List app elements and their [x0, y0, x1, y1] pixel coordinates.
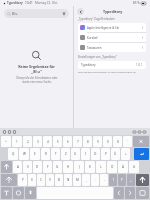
- button[interactable]: O: [91, 148, 100, 160]
- button[interactable]: 1: [12, 136, 22, 147]
- button[interactable]: 2: [23, 136, 32, 147]
- staticText: Überprüfe die Schreibweise oder: [16, 76, 58, 80]
- button[interactable]: C: [37, 174, 45, 186]
- button[interactable]: N: [64, 174, 72, 186]
- button[interactable]: 7: [73, 136, 82, 147]
- button[interactable]: Links: [114, 187, 124, 199]
- button[interactable]: Umschalt links: [1, 174, 17, 186]
- button[interactable]: L: [96, 161, 106, 173]
- button[interactable]: H: [63, 161, 73, 173]
- button[interactable]: T: [51, 148, 60, 160]
- button[interactable]: +: [121, 148, 130, 160]
- staticText: !: [113, 178, 114, 182]
- button[interactable]: Z: [61, 148, 70, 160]
- staticText: Q: [12, 152, 15, 156]
- button[interactable]: Tastatur schließen: [136, 187, 149, 199]
- button[interactable]: ^: [1, 136, 11, 147]
- button[interactable]: I: [81, 148, 90, 160]
- button[interactable]: 9: [93, 136, 102, 147]
- button[interactable]: K: [85, 161, 95, 173]
- button[interactable]: S: [23, 161, 32, 173]
- button[interactable]: Ü: [111, 148, 120, 160]
- button[interactable]: Tastatur ausblenden: [1, 187, 12, 199]
- button[interactable]: R: [41, 148, 50, 160]
- button[interactable]: Q: [8, 148, 18, 160]
- button[interactable]: 0: [103, 136, 112, 147]
- button[interactable]: .: [91, 174, 99, 186]
- button[interactable]: ß: [113, 136, 122, 147]
- button[interactable]: F: [43, 161, 52, 173]
- button[interactable]: !: [109, 174, 117, 186]
- button[interactable]: 3: [33, 136, 42, 147]
- button[interactable]: Aktion 2: [137, 130, 141, 134]
- button[interactable]: D: [33, 161, 42, 173]
- button[interactable]: E: [30, 148, 40, 160]
- button[interactable]: ,: [82, 174, 90, 186]
- button[interactable]: P: [101, 148, 110, 160]
- button[interactable]: Umschalt rechts: [136, 174, 149, 186]
- button[interactable]: Aktion 3: [142, 130, 146, 134]
- staticText: 0: [107, 140, 109, 144]
- staticText: Montag 22. Okt.: [35, 1, 58, 5]
- button[interactable]: Feststelltaste: [1, 161, 12, 173]
- button[interactable]: V: [46, 174, 54, 186]
- button[interactable]: Y: [18, 174, 27, 186]
- button[interactable]: 8: [83, 136, 92, 147]
- button[interactable]: Emoji: [13, 187, 24, 199]
- button[interactable]: 5: [53, 136, 62, 147]
- button[interactable]: -: [100, 174, 108, 186]
- staticText: D: [36, 165, 39, 169]
- button[interactable]: Werkzeug 2: [8, 130, 11, 134]
- staticText: Keine Ergebnisse für: [18, 64, 55, 69]
- button[interactable]: Bl u: [4, 9, 69, 18]
- staticText: K: [89, 165, 91, 169]
- button[interactable]: Apple Intelligence & Siri: [78, 23, 146, 32]
- button[interactable]: Diktat: [25, 187, 36, 199]
- button[interactable]: G: [53, 161, 62, 173]
- staticText: 1: [16, 140, 18, 144]
- button[interactable]: J: [74, 161, 84, 173]
- button[interactable]: #: [129, 161, 139, 173]
- button[interactable]: Eingabe: [134, 148, 149, 160]
- staticText: 5: [57, 140, 59, 144]
- staticText: J: [79, 165, 80, 169]
- button[interactable]: _: [127, 174, 135, 186]
- button[interactable]: Ö: [107, 161, 117, 173]
- button[interactable]: 4: [43, 136, 52, 147]
- button[interactable]: Kurzbef.: [78, 33, 146, 42]
- button[interactable]: U: [71, 148, 80, 160]
- button[interactable]: Zurück: [77, 8, 84, 15]
- button[interactable]: ?: [118, 174, 126, 186]
- button[interactable]: X: [28, 174, 36, 186]
- button[interactable]: Werkzeug 1: [3, 130, 6, 134]
- staticText: V: [49, 178, 51, 182]
- staticText: 6: [67, 140, 69, 144]
- staticText: Z: [65, 152, 67, 156]
- staticText: 4: [47, 140, 49, 144]
- button[interactable]: Tastaturen: [78, 43, 146, 52]
- staticText: C: [40, 178, 42, 182]
- button[interactable]: Rechts: [125, 187, 135, 199]
- button[interactable]: W: [19, 148, 29, 160]
- button[interactable]: A: [13, 161, 22, 173]
- staticText: R: [45, 152, 47, 156]
- button[interactable]: Ä: [118, 161, 128, 173]
- staticText: O: [94, 152, 97, 156]
- staticText: H: [67, 165, 70, 169]
- staticText: ,: [86, 178, 87, 182]
- button[interactable]: Aktion 1: [132, 130, 136, 134]
- staticText: Tastaturen: [87, 46, 102, 50]
- staticText: B: [58, 178, 60, 182]
- button[interactable]: Löschen: [133, 136, 149, 147]
- button[interactable]: M: [73, 174, 81, 186]
- staticText: „Bl u": [31, 69, 42, 74]
- button[interactable]: Werkzeug 3: [13, 130, 16, 134]
- staticText: Y: [22, 178, 24, 182]
- button[interactable]: B: [55, 174, 63, 186]
- button[interactable]: Typeditory: [78, 61, 146, 69]
- staticText: Eine weitere Information zu den Einstell…: [78, 70, 137, 73]
- button[interactable]: 6: [63, 136, 72, 147]
- button[interactable]: ´: [123, 136, 132, 147]
- staticText: G: [56, 165, 59, 169]
